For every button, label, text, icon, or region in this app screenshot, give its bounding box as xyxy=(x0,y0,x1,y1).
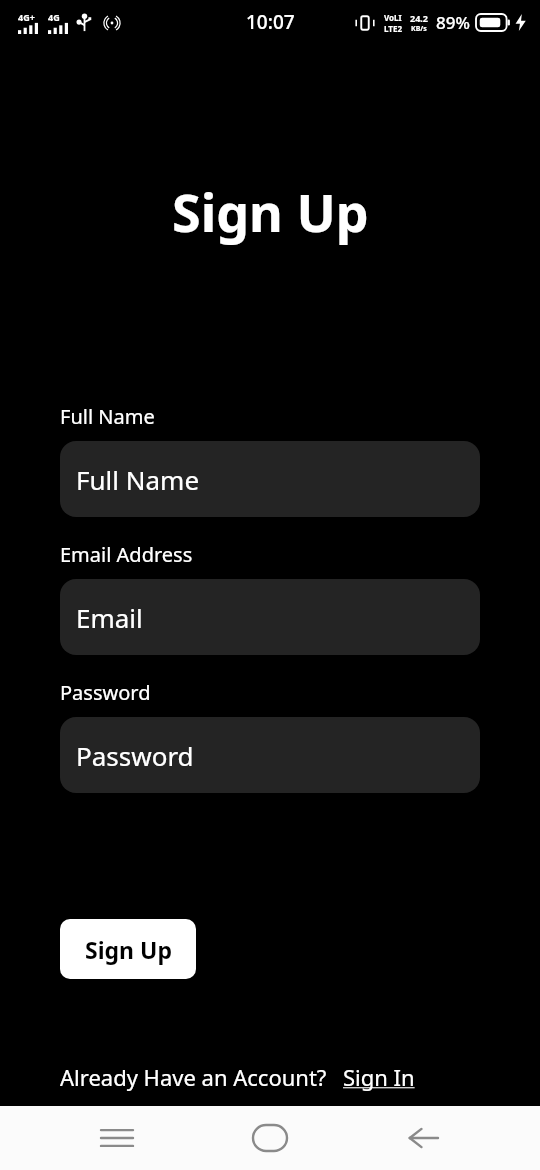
button[interactable]: Home xyxy=(234,1106,306,1170)
staticText: VoLI xyxy=(384,12,402,23)
button[interactable]: Password xyxy=(60,717,480,793)
staticText: 4G+ xyxy=(18,11,35,23)
staticText: Sign Up xyxy=(85,934,172,965)
staticText: Email xyxy=(76,600,143,635)
staticText: Full Name xyxy=(76,462,200,497)
staticText: KB/s xyxy=(411,24,427,34)
staticText: Password xyxy=(60,679,151,706)
button[interactable]: Recent apps xyxy=(81,1106,153,1170)
staticText: LTE2 xyxy=(384,23,402,34)
button[interactable]: Sign In xyxy=(343,1062,415,1092)
staticText: 4G xyxy=(48,11,60,23)
staticText: 10:07 xyxy=(246,9,295,35)
staticText: 24.2 xyxy=(410,12,428,24)
button[interactable]: Sign Up xyxy=(60,919,196,979)
button[interactable]: Back xyxy=(387,1106,459,1170)
staticText: Already Have an Account? xyxy=(60,1062,327,1092)
staticText: Password xyxy=(76,738,194,773)
staticText: 89% xyxy=(436,11,470,34)
button[interactable]: Full Name xyxy=(60,441,480,517)
button[interactable]: Email xyxy=(60,579,480,655)
staticText: Full Name xyxy=(60,403,155,430)
staticText: Email Address xyxy=(60,541,193,568)
staticText: Sign Up xyxy=(172,176,369,247)
staticText: Sign In xyxy=(343,1062,415,1092)
